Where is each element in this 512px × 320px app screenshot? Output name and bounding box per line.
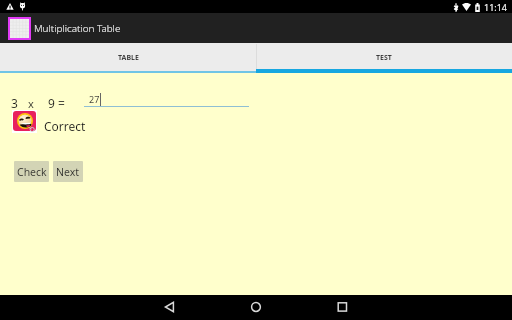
staticText: TEST — [376, 53, 392, 63]
staticText: Correct — [44, 118, 86, 134]
button[interactable]: Recent apps — [322, 295, 362, 320]
staticText: TABLE — [118, 53, 139, 63]
button[interactable]: Home — [236, 295, 276, 320]
staticText: Next — [56, 165, 80, 179]
staticText: 3 — [11, 95, 18, 111]
button[interactable]: TEST — [256, 43, 512, 73]
staticText: 11:14 — [484, 1, 508, 13]
staticText: Multiplication Table — [34, 21, 121, 34]
staticText: x — [28, 96, 34, 111]
staticText: 27 — [89, 93, 100, 105]
staticText: Check — [17, 165, 47, 179]
button[interactable]: 27 — [84, 92, 249, 107]
button[interactable]: Check — [14, 161, 49, 182]
button[interactable]: Back — [149, 295, 189, 320]
staticText: 9 = — [48, 95, 65, 111]
button[interactable]: Next — [53, 161, 83, 182]
button[interactable]: TABLE — [0, 43, 256, 73]
